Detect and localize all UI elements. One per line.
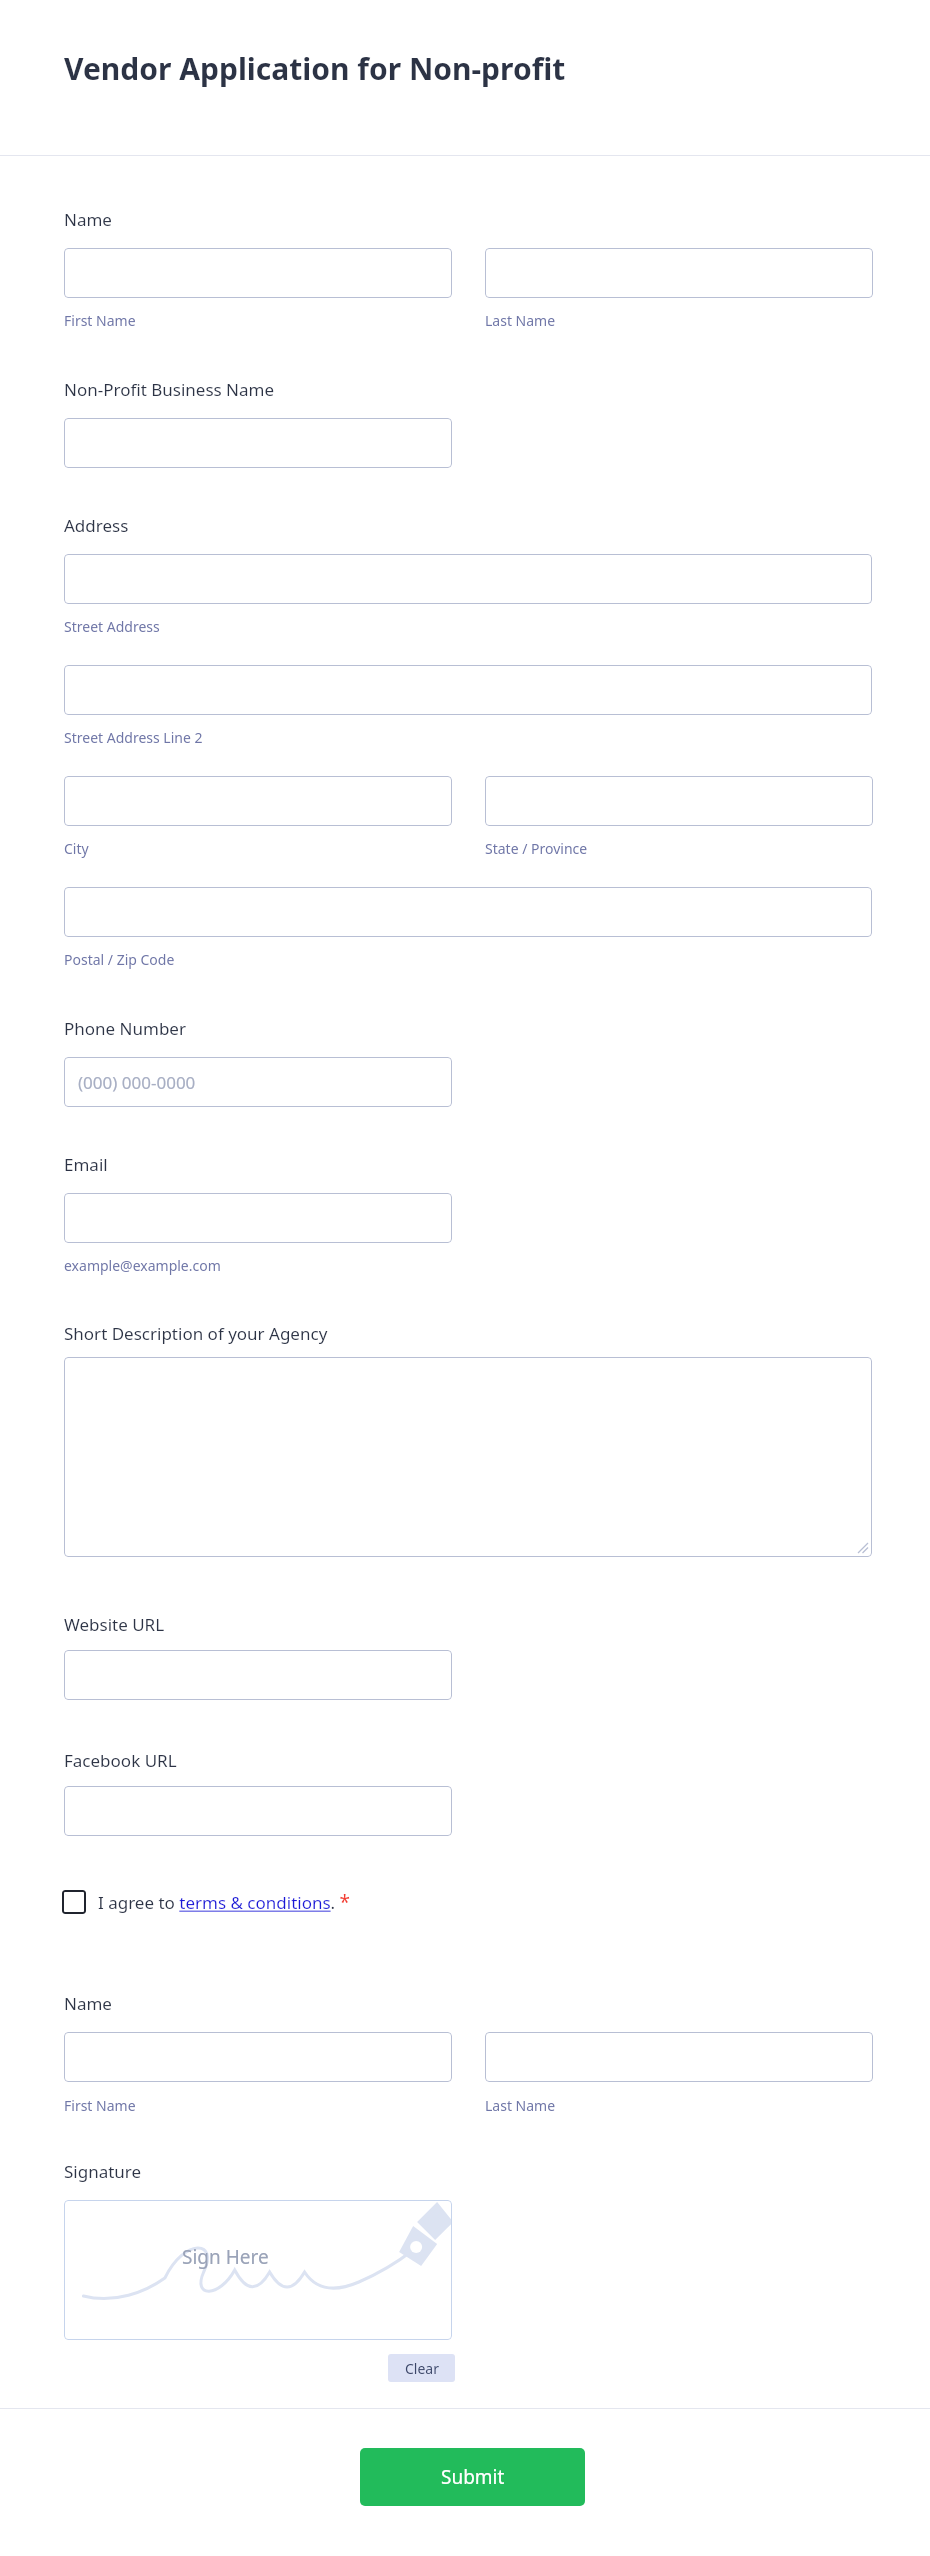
staticText: Street Address Line 2 <box>64 728 203 747</box>
staticText: State / Province <box>485 839 588 858</box>
staticText: Non-Profit Business Name <box>64 378 275 401</box>
button[interactable]: (000) 000-0000 <box>64 1057 452 1107</box>
staticText: Email <box>64 1153 108 1176</box>
staticText: Short Description of your Agency <box>64 1322 328 1345</box>
staticText: First Name <box>64 311 136 330</box>
staticText: Signature <box>64 2160 142 2183</box>
staticText: Website URL <box>64 1613 165 1636</box>
staticText: Vendor Application for Non-profit <box>64 48 566 89</box>
staticText: Name <box>64 208 112 231</box>
staticText: First Name <box>64 2096 136 2115</box>
button[interactable] <box>64 1650 452 1700</box>
button[interactable]: Clear <box>388 2354 455 2382</box>
button[interactable] <box>64 1786 452 1836</box>
staticText: example@example.com <box>64 1256 221 1275</box>
staticText: Clear <box>405 2359 439 2378</box>
button[interactable] <box>64 776 452 826</box>
button[interactable] <box>485 248 873 298</box>
staticText: Name <box>64 1992 112 2015</box>
button[interactable]: Signature pad, sign here <box>64 2200 452 2340</box>
button[interactable] <box>64 665 872 715</box>
staticText: Facebook URL <box>64 1749 177 1772</box>
staticText: I agree to terms & conditions. * <box>98 1889 351 1915</box>
staticText: Street Address <box>64 617 160 636</box>
staticText: (000) 000-0000 <box>78 1071 196 1094</box>
button[interactable] <box>64 887 872 937</box>
button[interactable] <box>64 1193 452 1243</box>
button[interactable] <box>485 2032 873 2082</box>
button[interactable] <box>64 418 452 468</box>
button[interactable]: I agree to terms & conditions. * <box>62 1884 351 1920</box>
button[interactable] <box>64 248 452 298</box>
staticText: City <box>64 839 89 858</box>
staticText: Phone Number <box>64 1017 186 1040</box>
button[interactable] <box>64 554 872 604</box>
staticText: Submit <box>441 2464 505 2490</box>
button[interactable] <box>485 776 873 826</box>
button[interactable]: Submit <box>360 2448 585 2506</box>
staticText: Sign Here <box>182 2244 269 2270</box>
button[interactable] <box>64 1357 872 1557</box>
button[interactable] <box>64 2032 452 2082</box>
staticText: Last Name <box>485 2096 556 2115</box>
staticText: Address <box>64 514 129 537</box>
staticText: Last Name <box>485 311 556 330</box>
staticText: Postal / Zip Code <box>64 950 175 969</box>
